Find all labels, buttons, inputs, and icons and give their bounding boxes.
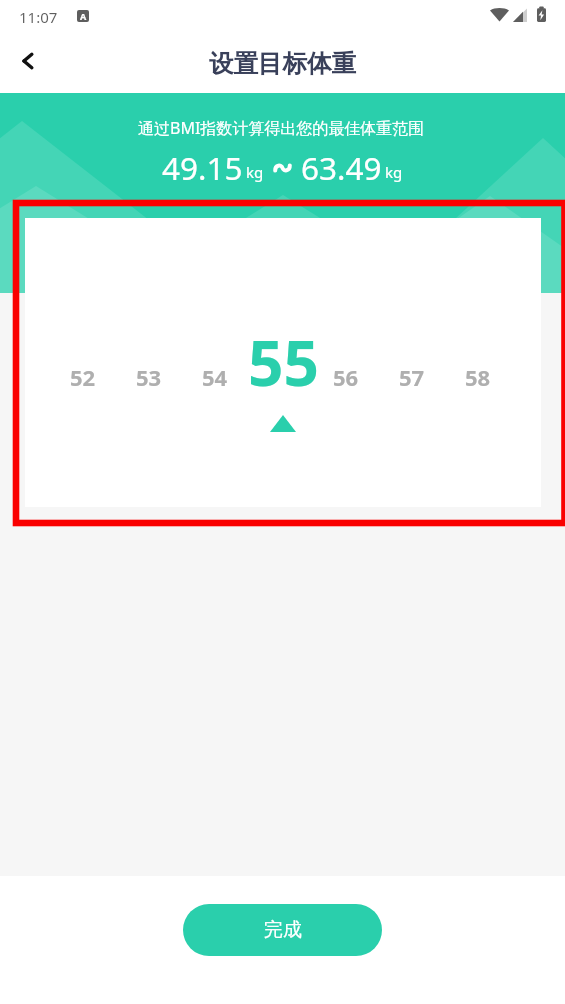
staticText: 55 — [248, 320, 319, 404]
staticText: 52 — [70, 362, 96, 392]
staticText: 56 — [333, 362, 359, 392]
staticText: 11:07 — [19, 7, 58, 27]
staticText: kg — [246, 162, 264, 182]
staticText: 57 — [399, 362, 425, 392]
staticText: 完成 — [264, 918, 302, 942]
button[interactable]: Back — [5, 38, 51, 84]
staticText: 设置目标体重 — [209, 48, 356, 79]
button[interactable]: 完成 — [183, 904, 382, 956]
staticText: 54 — [202, 362, 228, 392]
staticText: 63.49 — [301, 146, 382, 189]
staticText: 通过BMI指数计算得出您的最佳体重范围 — [138, 117, 425, 139]
staticText: 53 — [136, 362, 162, 392]
staticText: 49.15 — [162, 146, 243, 189]
staticText: kg — [385, 162, 403, 182]
staticText: 58 — [465, 362, 491, 392]
staticText: A — [80, 10, 87, 22]
